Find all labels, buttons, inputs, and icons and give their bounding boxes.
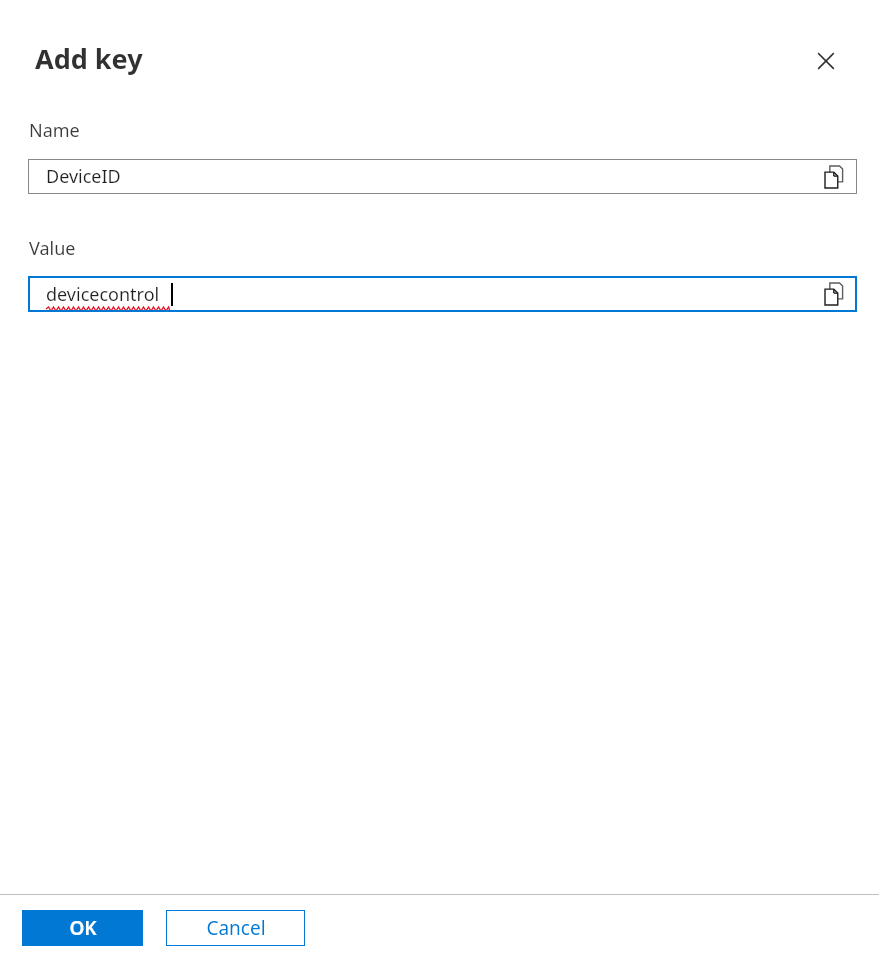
staticText: OK xyxy=(69,915,97,941)
button[interactable]: devicecontrol xyxy=(28,276,857,312)
staticText: devicecontrol xyxy=(46,282,160,307)
staticText: DeviceID xyxy=(46,164,121,189)
button[interactable]: Close xyxy=(802,37,850,85)
button[interactable]: Copy value xyxy=(822,280,850,308)
staticText: Cancel xyxy=(206,915,266,941)
staticText: Add key xyxy=(35,40,143,77)
button[interactable]: DeviceID xyxy=(28,159,857,194)
staticText: Name xyxy=(29,118,80,143)
staticText: Value xyxy=(29,236,76,261)
button[interactable]: OK xyxy=(22,910,143,946)
button[interactable]: Cancel xyxy=(166,910,305,946)
button[interactable]: Copy name xyxy=(822,163,850,191)
